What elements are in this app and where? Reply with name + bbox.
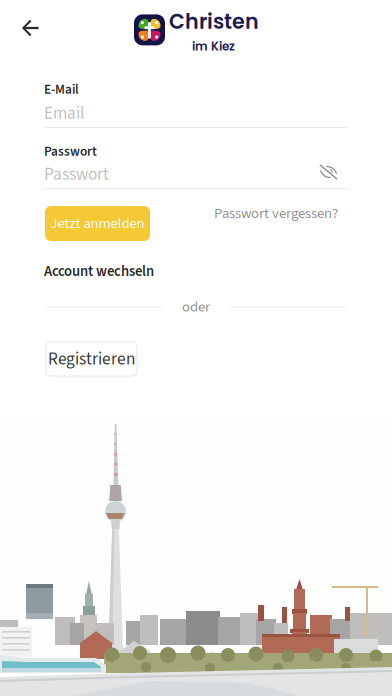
button[interactable]: Passwort vergessen? <box>208 197 344 230</box>
staticText: E-Mail <box>44 80 79 99</box>
staticText: Account wechseln <box>44 261 154 282</box>
button[interactable]: Back <box>2 5 53 51</box>
button[interactable]: Jetzt anmelden <box>45 206 150 241</box>
staticText: oder <box>182 297 210 317</box>
staticText: Passwort <box>44 142 97 161</box>
staticText: Registrieren <box>48 347 135 371</box>
staticText: Christen <box>169 7 259 36</box>
staticText: Jetzt anmelden <box>50 213 144 234</box>
button[interactable]: Show password <box>313 158 344 186</box>
staticText: Passwort <box>44 162 109 187</box>
staticText: im Kiez <box>192 38 235 55</box>
staticText: Passwort vergessen? <box>214 203 338 224</box>
button[interactable]: Registrieren <box>46 342 137 376</box>
staticText: Email <box>44 101 84 126</box>
button[interactable]: Account wechseln <box>38 255 160 288</box>
